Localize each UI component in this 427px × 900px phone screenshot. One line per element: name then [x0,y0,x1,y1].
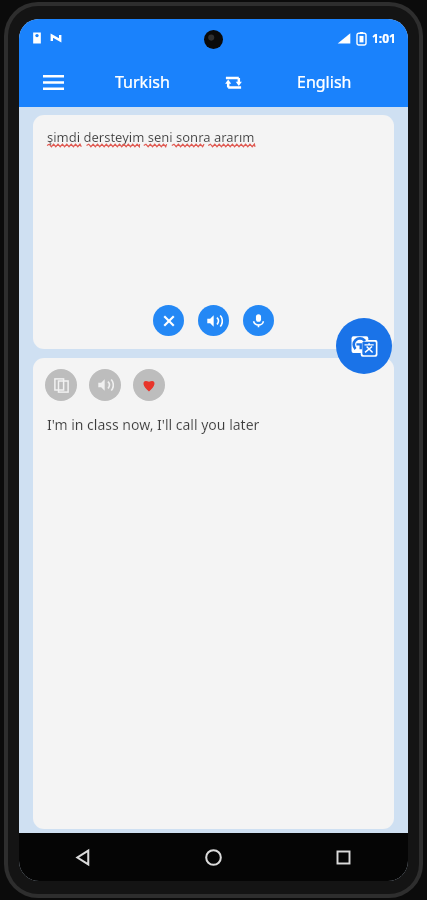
button[interactable]: Swap languages [212,61,254,103]
button[interactable]: Copy [45,369,77,401]
button[interactable]: Home [148,833,278,881]
button[interactable]: Recent apps [278,833,408,881]
staticText: şimdi dersteyim seni sonra ararım [47,128,255,146]
button[interactable]: Menu [33,62,73,102]
button[interactable]: English [254,71,394,93]
button[interactable]: Favorite [133,369,165,401]
button[interactable]: Clear [153,305,184,336]
button[interactable]: Translate [336,318,392,374]
button[interactable]: Listen [198,305,229,336]
staticText: Turkish [115,71,170,93]
staticText: English [297,71,352,93]
button[interactable]: Turkish [73,71,212,93]
button[interactable]: Back [19,833,148,881]
button[interactable]: Listen [89,369,121,401]
staticText: I'm in class now, I'll call you later [47,415,260,434]
button[interactable]: Voice input [243,305,274,336]
staticText: 1:01 [372,30,396,46]
